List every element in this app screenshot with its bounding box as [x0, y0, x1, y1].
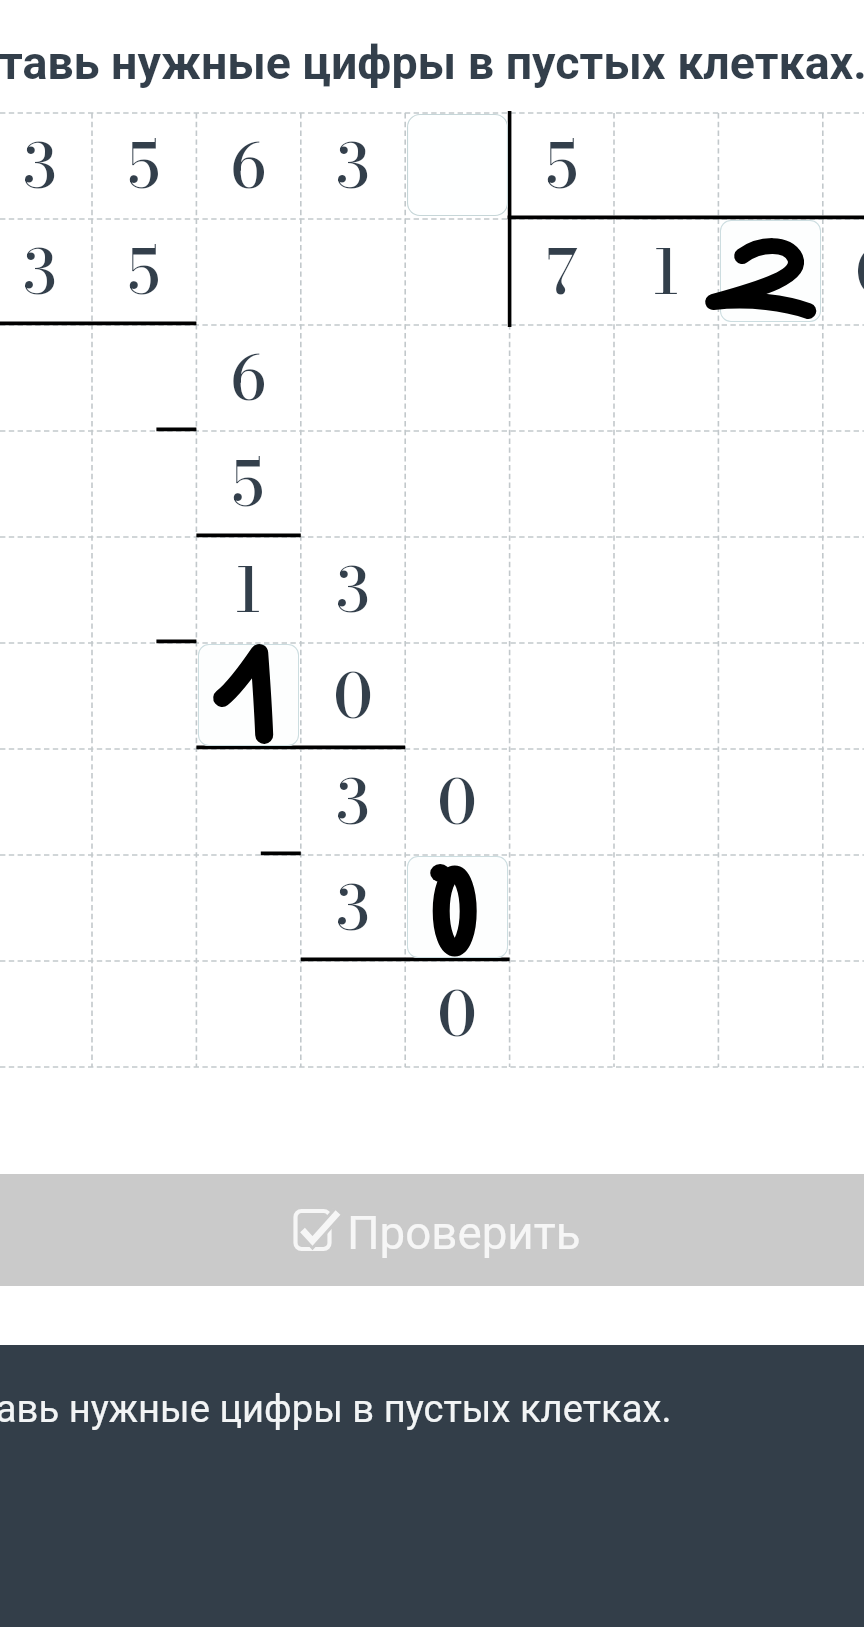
staticText: 5	[128, 224, 160, 319]
staticText: 3	[23, 224, 57, 319]
staticText: Вставь нужные цифры в пустых клетках.	[0, 36, 864, 91]
staticText: 3	[336, 542, 370, 637]
staticText: 3	[336, 118, 370, 213]
staticText: Проверить	[347, 1207, 581, 1261]
staticText: 0	[855, 224, 864, 319]
staticText: Вставь нужные цифры в пустых клетках.	[0, 1387, 672, 1432]
staticText: 5	[546, 118, 578, 213]
staticText: 6	[230, 118, 266, 213]
staticText: 0	[437, 966, 477, 1061]
other: Проверить	[291, 1208, 343, 1256]
staticText: 7	[546, 224, 578, 319]
staticText: 1	[652, 224, 680, 319]
staticText: 6	[230, 330, 266, 425]
staticText: 3	[336, 754, 370, 849]
button[interactable]: Пустая клетка	[407, 114, 508, 216]
staticText: 0	[437, 754, 477, 849]
staticText: 5	[128, 118, 160, 213]
button[interactable]: Проверить	[0, 1174, 864, 1286]
button[interactable]: Введённая цифра	[720, 220, 821, 322]
staticText: 5	[232, 436, 264, 531]
button[interactable]: Введённая цифра	[198, 644, 299, 746]
staticText: 3	[23, 118, 57, 213]
staticText: 3	[336, 860, 370, 955]
staticText: 1	[234, 542, 262, 637]
staticText: 0	[333, 648, 373, 743]
button[interactable]: Введённая цифра	[407, 856, 508, 958]
